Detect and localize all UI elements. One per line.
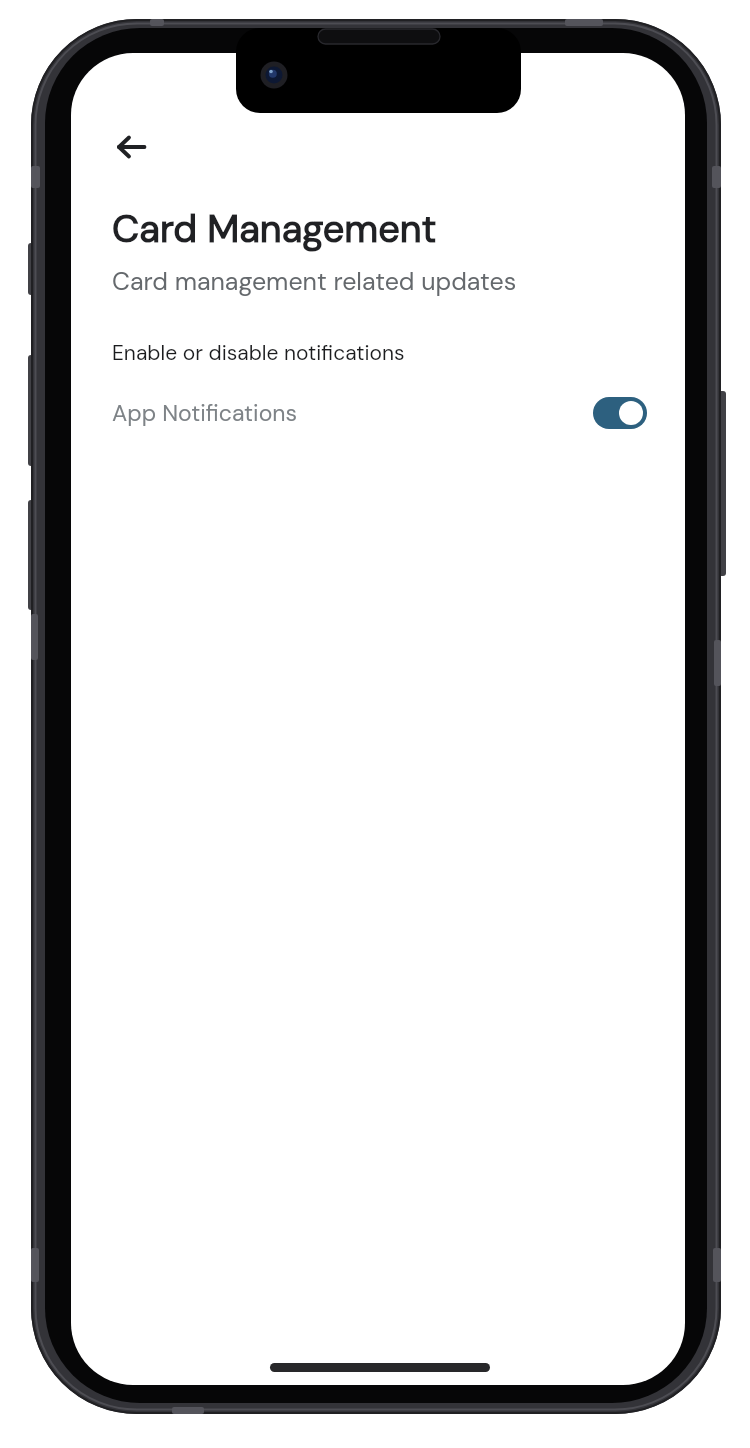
staticText: Card Management: [112, 204, 437, 253]
staticText: Card management related updates: [112, 265, 517, 298]
staticText: App Notifications: [112, 398, 298, 428]
button[interactable]: [107, 123, 155, 171]
button[interactable]: App Notifications: [112, 390, 647, 435]
staticText: Enable or disable notifications: [112, 339, 405, 366]
